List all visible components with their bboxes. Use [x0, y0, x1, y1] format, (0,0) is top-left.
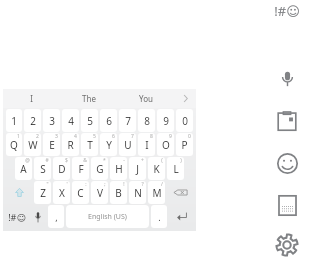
staticText: English (US) [88, 212, 127, 222]
staticText: & [83, 157, 87, 164]
button[interactable]: Shift [6, 181, 32, 204]
button[interactable]: Voice input [270, 61, 304, 95]
button[interactable]: English (US) [66, 205, 149, 228]
button[interactable]: Settings [270, 230, 304, 260]
staticText: B [115, 186, 122, 200]
button[interactable]: , [48, 205, 64, 228]
staticText: G [96, 162, 104, 176]
staticText: N [134, 186, 142, 200]
staticText: 7 [125, 114, 131, 128]
button[interactable]: ) [167, 157, 184, 180]
staticText: 6 [112, 133, 115, 140]
button[interactable]: 4 [62, 109, 79, 132]
button[interactable]: 7 [119, 109, 136, 132]
button[interactable]: 6 [100, 109, 117, 132]
staticText: 2 [36, 133, 39, 140]
button[interactable]: More suggestions [174, 89, 196, 108]
button[interactable]: ? [129, 181, 146, 204]
staticText: 1 [17, 133, 20, 140]
button[interactable]: 1 [6, 133, 22, 156]
staticText: 0 [188, 133, 191, 140]
button[interactable]: 8 [138, 109, 155, 132]
button[interactable]: Symbols and emoji [267, 0, 307, 22]
button[interactable]: ( [148, 157, 165, 180]
staticText: . [158, 211, 161, 223]
button[interactable]: 5 [81, 109, 98, 132]
button[interactable]: 9 [157, 109, 174, 132]
staticText: Y [106, 138, 112, 152]
staticText: L [173, 162, 179, 176]
staticText: F [78, 162, 84, 176]
staticText: X [59, 186, 65, 200]
button[interactable]: $ [53, 157, 70, 180]
button[interactable]: Keyboard layout [270, 188, 304, 222]
button[interactable]: 1 [6, 109, 22, 132]
button[interactable]: Enter [169, 205, 193, 228]
button[interactable]: 9 [157, 133, 174, 156]
button[interactable]: ! [110, 181, 127, 204]
staticText: 9 [169, 133, 172, 140]
button[interactable]: ' [53, 181, 70, 204]
staticText: ' [66, 181, 68, 188]
button[interactable]: 2 [24, 109, 41, 132]
button[interactable]: 5 [81, 133, 98, 156]
staticText: 7 [131, 133, 134, 140]
button[interactable]: 6 [100, 133, 117, 156]
button[interactable]: Backspace [167, 181, 193, 204]
staticText: V [97, 186, 103, 200]
button[interactable]: " [34, 181, 51, 204]
button[interactable]: @ [15, 157, 32, 180]
staticText: A [20, 162, 27, 176]
staticText: 3 [49, 114, 55, 128]
button[interactable]: 3 [43, 109, 60, 132]
button[interactable]: Clipboard [270, 104, 304, 138]
button[interactable]: You [117, 89, 174, 108]
button[interactable]: Emoji [270, 146, 304, 180]
button[interactable]: Voice input [30, 205, 46, 228]
staticText: $ [65, 157, 68, 164]
button[interactable]: / [148, 181, 165, 204]
button[interactable]: 2 [24, 133, 41, 156]
staticText: ? [141, 181, 144, 188]
staticText: P [181, 138, 188, 152]
staticText: I [145, 138, 149, 152]
staticText: The [82, 93, 96, 104]
button[interactable]: ; [91, 181, 108, 204]
staticText: K [153, 162, 160, 176]
staticText: ! [123, 181, 125, 188]
button[interactable]: 8 [138, 133, 155, 156]
staticText: 8 [150, 133, 153, 140]
button[interactable]: : [72, 181, 89, 204]
staticText: 4 [74, 133, 77, 140]
button[interactable]: # [34, 157, 51, 180]
staticText: " [46, 181, 49, 188]
staticText: I [30, 93, 33, 104]
staticText: O [162, 138, 170, 152]
button[interactable]: 7 [119, 133, 136, 156]
button[interactable]: 0 [176, 109, 193, 132]
staticText: 0 [182, 114, 188, 128]
staticText: 5 [87, 114, 93, 128]
staticText: , [55, 211, 58, 223]
staticText: C [77, 186, 84, 200]
button[interactable]: I [3, 89, 60, 108]
button[interactable]: The [60, 89, 117, 108]
staticText: Z [40, 186, 46, 200]
button[interactable]: 0 [176, 133, 193, 156]
staticText: 3 [55, 133, 58, 140]
button[interactable]: Symbols [6, 205, 28, 228]
button[interactable]: 4 [62, 133, 79, 156]
button[interactable]: . [151, 205, 167, 228]
button[interactable]: - [110, 157, 127, 180]
staticText: !#☺ [274, 2, 300, 20]
staticText: / [161, 181, 163, 188]
staticText: 9 [163, 114, 169, 128]
button[interactable]: * [91, 157, 108, 180]
staticText: R [67, 138, 74, 152]
staticText: H [115, 162, 123, 176]
button[interactable]: + [129, 157, 146, 180]
staticText: M [152, 186, 162, 200]
button[interactable]: 3 [43, 133, 60, 156]
button[interactable]: & [72, 157, 89, 180]
staticText: : [85, 181, 87, 188]
